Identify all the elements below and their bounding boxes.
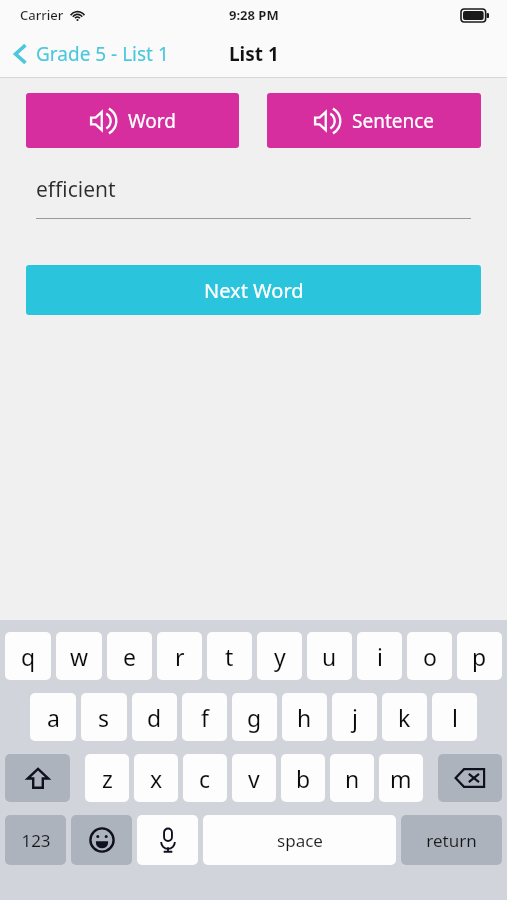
button[interactable]: p xyxy=(457,632,502,680)
staticText: r xyxy=(175,641,185,672)
staticText: 123 xyxy=(21,829,51,852)
button[interactable]: m xyxy=(379,754,423,802)
staticText: efficient xyxy=(36,175,116,204)
staticText: k xyxy=(398,702,411,733)
staticText: n xyxy=(345,763,360,794)
staticText: Carrier xyxy=(20,6,64,24)
button[interactable]: x xyxy=(134,754,178,802)
button[interactable]: Shift xyxy=(5,754,70,802)
staticText: s xyxy=(98,702,110,733)
button[interactable]: e xyxy=(107,632,152,680)
button[interactable]: t xyxy=(207,632,252,680)
staticText: Next Word xyxy=(204,277,304,304)
button[interactable]: Emoji xyxy=(71,815,132,865)
staticText: space xyxy=(277,829,323,852)
staticText: u xyxy=(322,641,337,672)
staticText: g xyxy=(247,702,262,733)
staticText: q xyxy=(21,641,36,672)
staticText: l xyxy=(452,702,458,733)
button[interactable]: Next Word xyxy=(26,265,481,315)
staticText: 9:28 PM xyxy=(229,6,279,24)
button[interactable]: z xyxy=(85,754,129,802)
staticText: d xyxy=(147,702,162,733)
button[interactable]: w xyxy=(56,632,102,680)
button[interactable]: Grade 5 - List 1 xyxy=(0,35,179,73)
button[interactable]: j xyxy=(332,693,377,741)
button[interactable]: i xyxy=(357,632,402,680)
staticText: z xyxy=(102,763,113,794)
staticText: w xyxy=(70,641,89,672)
button[interactable]: 123 xyxy=(5,815,66,865)
staticText: a xyxy=(47,702,60,733)
button[interactable]: r xyxy=(157,632,202,680)
staticText: y xyxy=(274,641,286,672)
staticText: c xyxy=(199,763,211,794)
button[interactable]: Sentence xyxy=(267,93,481,148)
button[interactable]: Word xyxy=(26,93,239,148)
staticText: x xyxy=(150,763,163,794)
button[interactable]: c xyxy=(183,754,227,802)
button[interactable]: q xyxy=(5,632,51,680)
staticText: Grade 5 - List 1 xyxy=(36,41,169,67)
staticText: return xyxy=(426,829,477,852)
staticText: Sentence xyxy=(352,108,435,134)
button[interactable]: y xyxy=(257,632,302,680)
staticText: p xyxy=(472,641,487,672)
staticText: i xyxy=(377,641,383,672)
button[interactable]: space xyxy=(203,815,396,865)
staticText: List 1 xyxy=(229,41,279,67)
button[interactable]: s xyxy=(81,693,127,741)
staticText: m xyxy=(390,763,412,794)
staticText: b xyxy=(296,763,311,794)
button[interactable]: g xyxy=(232,693,277,741)
button[interactable]: Backspace xyxy=(438,754,502,802)
button[interactable]: efficient xyxy=(36,175,471,219)
staticText: v xyxy=(248,763,260,794)
button[interactable]: return xyxy=(401,815,502,865)
staticText: e xyxy=(123,641,136,672)
staticText: f xyxy=(201,702,209,733)
button[interactable]: Dictate xyxy=(137,815,198,865)
button[interactable]: l xyxy=(432,693,477,741)
button[interactable]: b xyxy=(281,754,325,802)
button[interactable]: u xyxy=(307,632,352,680)
button[interactable]: d xyxy=(132,693,177,741)
staticText: Word xyxy=(128,108,176,134)
button[interactable]: v xyxy=(232,754,276,802)
button[interactable]: n xyxy=(330,754,374,802)
button[interactable]: a xyxy=(30,693,76,741)
button[interactable]: h xyxy=(282,693,327,741)
staticText: j xyxy=(352,702,358,733)
staticText: o xyxy=(423,641,437,672)
staticText: h xyxy=(297,702,312,733)
button[interactable]: k xyxy=(382,693,427,741)
button[interactable]: o xyxy=(407,632,452,680)
button[interactable]: f xyxy=(182,693,227,741)
staticText: t xyxy=(225,641,234,672)
